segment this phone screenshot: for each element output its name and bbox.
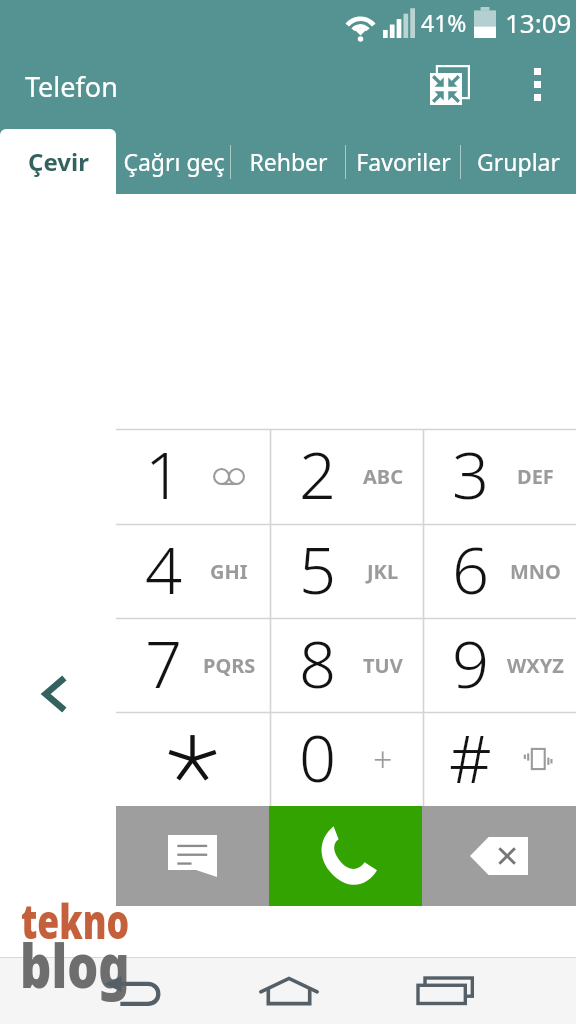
button[interactable]: Back: [52, 958, 210, 1024]
button[interactable]: Hide keypad: [0, 429, 116, 806]
staticText: 3: [452, 430, 490, 519]
button[interactable]: 3: [423, 429, 576, 524]
staticText: 7: [145, 619, 183, 708]
staticText: 2: [299, 430, 337, 519]
staticText: Çağrı geç: [123, 146, 225, 177]
staticText: TUV: [363, 652, 403, 679]
button[interactable]: #: [423, 712, 576, 806]
staticText: 41%: [421, 7, 467, 38]
button[interactable]: 8: [270, 618, 423, 712]
staticText: 4: [145, 525, 183, 614]
staticText: Çevir: [28, 145, 89, 178]
staticText: 13:09: [505, 5, 572, 40]
button[interactable]: 7: [116, 618, 270, 712]
staticText: +: [373, 736, 393, 782]
button[interactable]: More options: [500, 44, 576, 129]
button[interactable]: 9: [423, 618, 576, 712]
staticText: PQRS: [203, 652, 256, 679]
button[interactable]: 0: [270, 712, 423, 806]
staticText: GHI: [210, 558, 248, 585]
staticText: 9: [452, 619, 490, 708]
button[interactable]: 5: [270, 524, 423, 618]
staticText: ABC: [363, 463, 403, 490]
staticText: 6: [452, 525, 490, 614]
staticText: Gruplar: [477, 146, 560, 177]
staticText: DEF: [517, 463, 554, 490]
button[interactable]: Gruplar: [461, 129, 576, 194]
button[interactable]: Rehber: [231, 129, 346, 194]
button[interactable]: Call: [269, 806, 422, 906]
staticText: 1: [145, 430, 183, 519]
staticText: MNO: [510, 558, 561, 585]
button[interactable]: Recent apps: [367, 958, 524, 1024]
button[interactable]: [116, 712, 270, 806]
staticText: Rehber: [249, 146, 328, 177]
button[interactable]: 6: [423, 524, 576, 618]
staticText: Favoriler: [356, 146, 451, 177]
staticText: blog: [20, 923, 130, 1006]
staticText: 5: [299, 525, 337, 614]
button[interactable]: Home: [210, 958, 367, 1024]
button[interactable]: 4: [116, 524, 270, 618]
staticText: Telefon: [25, 68, 118, 105]
button[interactable]: Send message: [116, 806, 269, 906]
button[interactable]: Backspace: [422, 806, 576, 906]
button[interactable]: Favoriler: [346, 129, 461, 194]
button[interactable]: 1: [116, 429, 270, 524]
staticText: tekno: [21, 888, 130, 953]
staticText: 0: [299, 713, 337, 802]
button[interactable]: Çevir: [0, 129, 116, 194]
staticText: 8: [299, 619, 337, 708]
button[interactable]: 2: [270, 429, 423, 524]
staticText: WXYZ: [507, 652, 564, 679]
button[interactable]: One-handed operation: [420, 44, 500, 129]
staticText: #: [449, 712, 492, 802]
staticText: JKL: [367, 558, 399, 585]
button[interactable]: Çağrı geç: [116, 129, 231, 194]
